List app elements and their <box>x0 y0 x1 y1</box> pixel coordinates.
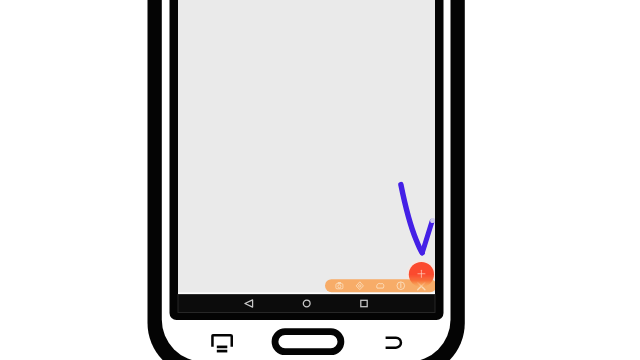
button[interactable]: Add location <box>350 279 370 292</box>
button[interactable]: Recents key <box>206 330 238 356</box>
button[interactable]: Recent apps <box>347 295 381 313</box>
button[interactable]: Undo <box>370 279 390 292</box>
button[interactable]: Take photo <box>329 279 349 292</box>
button[interactable]: Close menu <box>411 279 431 292</box>
button[interactable]: Home <box>290 295 324 313</box>
button[interactable]: Back <box>232 295 266 313</box>
button[interactable]: Back key <box>381 332 407 354</box>
button[interactable]: Add <box>409 262 433 286</box>
button[interactable]: Home key <box>272 328 345 355</box>
button[interactable]: Details <box>391 279 411 292</box>
